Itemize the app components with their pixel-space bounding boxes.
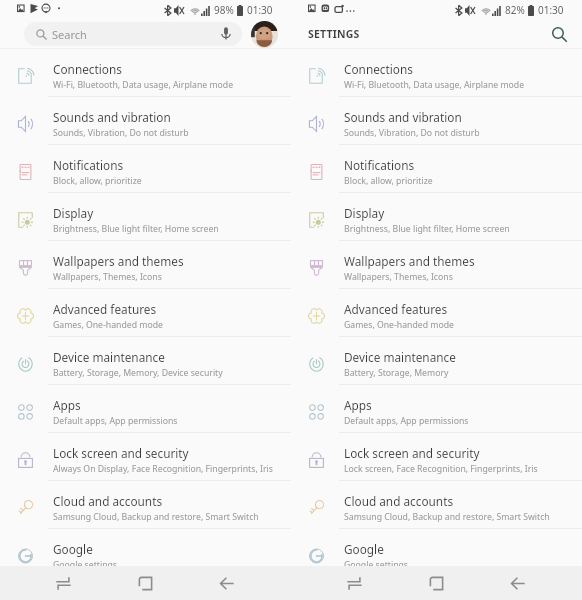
staticText: Default apps, App permissions [344,415,469,427]
staticText: 82% [505,3,525,17]
button[interactable]: Display [291,193,582,241]
staticText: Wi-Fi, Bluetooth, Data usage, Airplane m… [53,79,234,91]
staticText: Lock screen and security [344,445,480,461]
button[interactable]: Cloud and accounts [291,481,582,529]
staticText: Brightness, Blue light filter, Home scre… [53,223,219,235]
button[interactable]: Connections [291,49,582,97]
staticText: Display [53,205,94,221]
staticText: Notifications [53,157,124,173]
staticText: Battery, Storage, Memory, Device securit… [53,367,223,379]
staticText: Wallpapers and themes [344,253,475,269]
staticText: Games, One-handed mode [344,319,454,331]
staticText: Wallpapers, Themes, Icons [344,271,453,283]
button[interactable]: Display [0,193,291,241]
button[interactable]: Notifications [291,145,582,193]
button[interactable]: Sounds and vibration [291,97,582,145]
staticText: Sounds, Vibration, Do not disturb [53,127,189,139]
staticText: Wallpapers, Themes, Icons [53,271,162,283]
button[interactable]: Google [0,529,291,577]
button[interactable]: Device maintenance [291,337,582,385]
staticText: Block, allow, prioritize [344,175,433,187]
staticText: Block, allow, prioritize [53,175,142,187]
staticText: Display [344,205,385,221]
staticText: Advanced features [344,301,448,317]
staticText: Samsung Cloud, Backup and restore, Smart… [344,511,550,523]
button[interactable]: Lock screen and security [0,433,291,481]
button[interactable]: Search [551,26,568,43]
button[interactable]: Search [24,22,242,46]
staticText: Samsung Cloud, Backup and restore, Smart… [53,511,259,523]
staticText: Apps [53,397,81,413]
button[interactable]: Recents [314,566,395,600]
staticText: SETTINGS [308,27,360,41]
staticText: Connections [53,61,122,77]
button[interactable]: Apps [291,385,582,433]
staticText: Search [52,27,87,42]
button[interactable]: Wallpapers and themes [291,241,582,289]
staticText: Notifications [344,157,415,173]
staticText: 01:30 [247,3,273,17]
staticText: 98% [214,3,234,17]
staticText: Google settings [53,559,118,571]
button[interactable]: Home [104,566,186,600]
staticText: Google [53,541,93,557]
button[interactable]: Apps [0,385,291,433]
staticText: Sounds and vibration [344,109,462,125]
button[interactable]: Google [291,529,582,577]
staticText: Sounds and vibration [53,109,171,125]
staticText: Cloud and accounts [53,493,163,509]
button[interactable]: Back [477,566,559,600]
staticText: Cloud and accounts [344,493,454,509]
staticText: Lock screen, Face Recognition, Fingerpri… [344,463,538,475]
staticText: Battery, Storage, Memory [344,367,449,379]
staticText: Device maintenance [344,349,456,365]
button[interactable]: Lock screen and security [291,433,582,481]
button[interactable]: Advanced features [0,289,291,337]
button[interactable]: Advanced features [291,289,582,337]
staticText: 01:30 [538,3,564,17]
button[interactable]: Home [395,566,477,600]
staticText: Default apps, App permissions [53,415,178,427]
button[interactable]: Cloud and accounts [0,481,291,529]
staticText: Sounds, Vibration, Do not disturb [344,127,480,139]
staticText: Advanced features [53,301,157,317]
staticText: Device maintenance [53,349,165,365]
staticText: Wi-Fi, Bluetooth, Data usage, Airplane m… [344,79,525,91]
button[interactable]: Profile [251,21,278,48]
button[interactable]: Voice search [218,26,234,42]
staticText: Google [344,541,384,557]
staticText: Lock screen and security [53,445,189,461]
staticText: Connections [344,61,413,77]
button[interactable]: Device maintenance [0,337,291,385]
staticText: Wallpapers and themes [53,253,184,269]
staticText: Brightness, Blue light filter, Home scre… [344,223,510,235]
staticText: Google settings [344,559,409,571]
button[interactable]: Recents [23,566,104,600]
button[interactable]: Connections [0,49,291,97]
staticText: Always On Display, Face Recognition, Fin… [53,463,273,475]
staticText: Games, One-handed mode [53,319,163,331]
button[interactable]: Notifications [0,145,291,193]
button[interactable]: Sounds and vibration [0,97,291,145]
staticText: Apps [344,397,372,413]
button[interactable]: Back [186,566,268,600]
button[interactable]: Wallpapers and themes [0,241,291,289]
